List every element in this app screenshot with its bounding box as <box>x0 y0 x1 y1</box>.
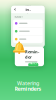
staticText: Reminder <box>25 49 39 60</box>
staticText: Reminders <box>14 85 41 92</box>
staticText: TODAY <box>14 15 23 18</box>
button[interactable] <box>13 35 43 43</box>
staticText: Watering <box>17 80 39 87</box>
button[interactable] <box>13 27 43 35</box>
button[interactable]: Water now <box>28 62 38 67</box>
staticText: Reminders <box>25 0 30 28</box>
button[interactable]: Back <box>13 6 17 13</box>
button[interactable] <box>13 19 43 27</box>
staticText: Water now <box>29 61 37 68</box>
